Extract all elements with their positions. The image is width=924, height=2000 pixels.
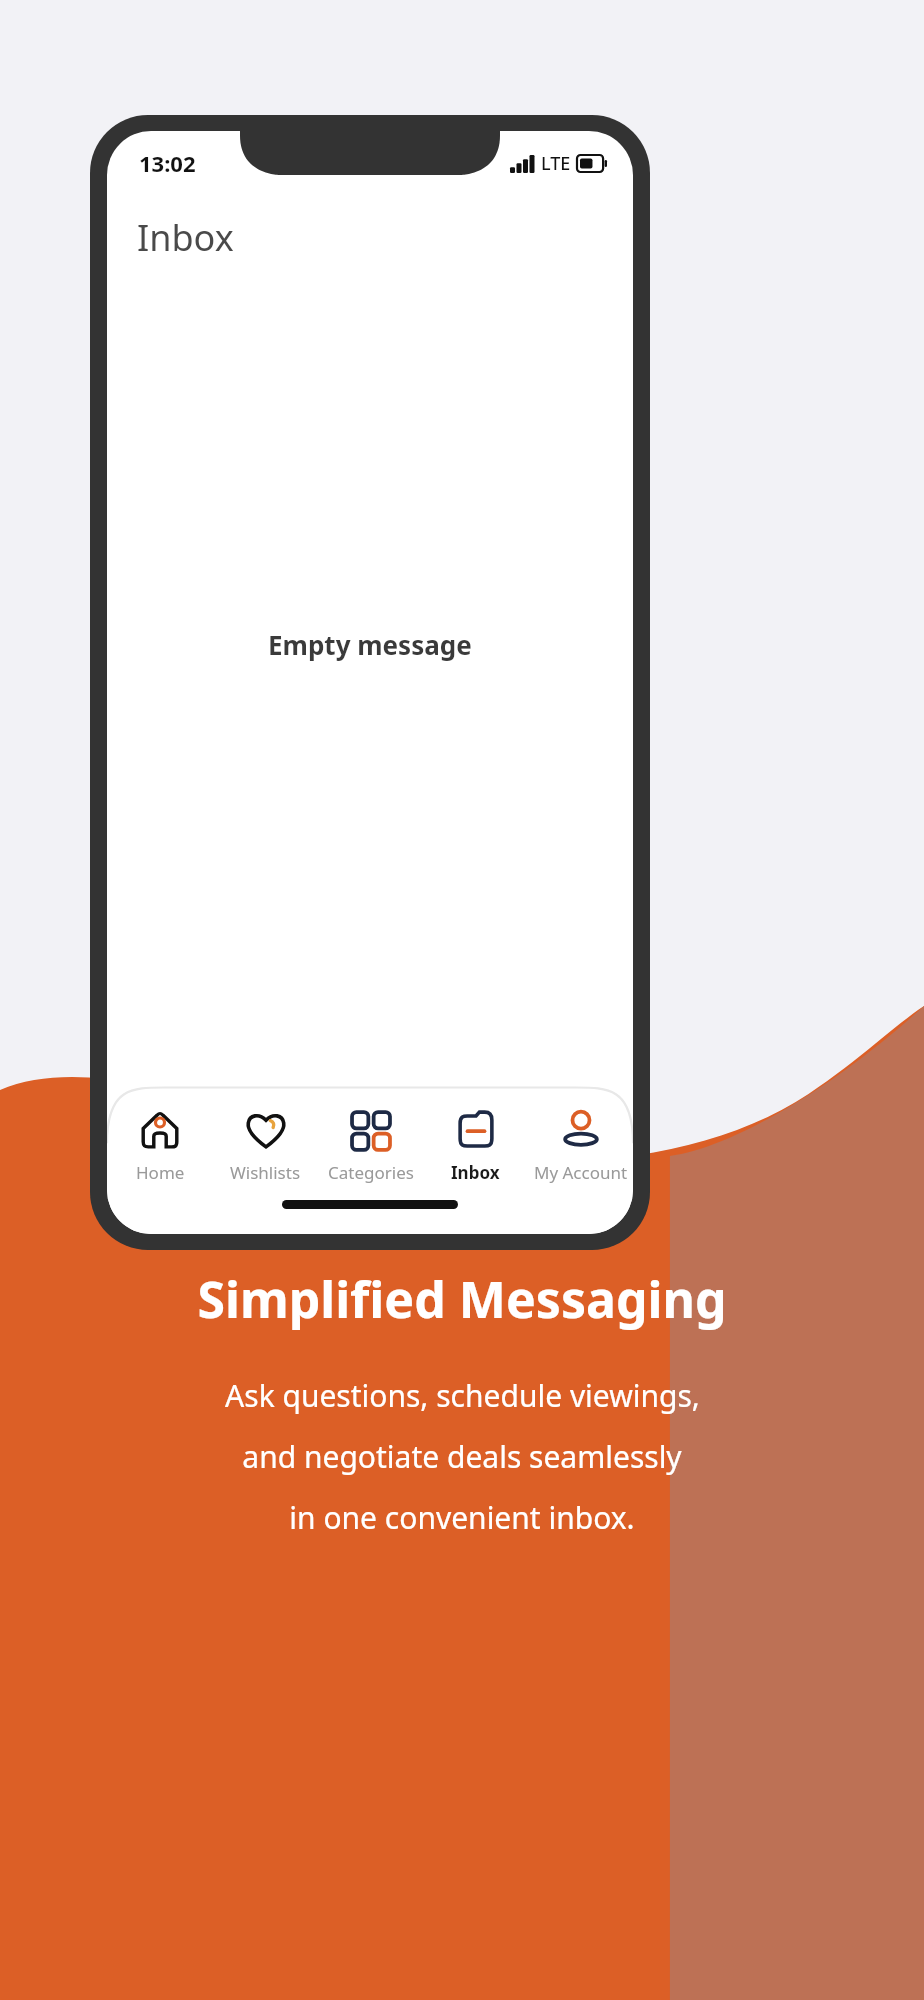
other: Home [137,1108,183,1154]
staticText: Simplified Messaging [197,1265,727,1333]
button[interactable]: Home [107,1106,213,1186]
staticText: Home [136,1161,185,1184]
staticText: Categories [328,1161,414,1184]
button[interactable]: Wishlists [213,1106,318,1186]
other: Inbox [453,1108,499,1154]
other: My Account [558,1108,604,1154]
other: Wishlists [243,1108,289,1154]
button[interactable]: Categories [318,1106,423,1186]
button[interactable]: Inbox [423,1106,528,1186]
staticText: Ask questions, schedule viewings, [225,1375,700,1416]
staticText: LTE [541,151,571,176]
staticText: My Account [534,1161,628,1184]
staticText: 13:02 [139,148,196,178]
staticText: Empty message [268,627,472,662]
staticText: Wishlists [230,1161,301,1184]
other: Categories [348,1108,394,1154]
staticText: Inbox [451,1161,500,1184]
staticText: in one convenient inbox. [289,1497,635,1538]
staticText: and negotiate deals seamlessly [242,1436,682,1477]
staticText: Inbox [137,213,234,262]
button[interactable]: My Account [528,1106,633,1186]
